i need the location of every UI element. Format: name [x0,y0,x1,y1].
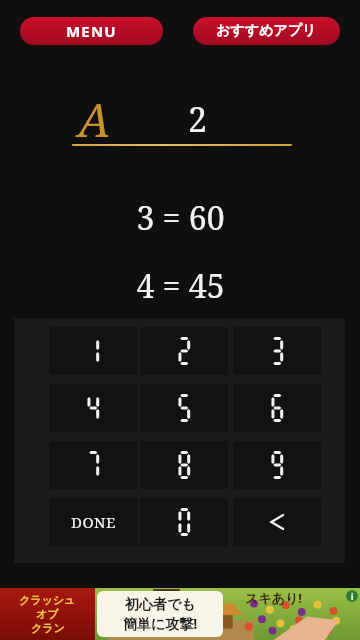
staticText: オブ [36,607,59,621]
staticText: A [78,88,111,151]
button[interactable]: Digit 1 [49,327,137,375]
staticText: MENU [66,21,117,41]
button[interactable]: Digit 8 [140,441,228,489]
button[interactable]: Digit 5 [140,384,228,432]
button[interactable]: Digit 2 [140,327,228,375]
button[interactable]: MENU [20,17,163,45]
button[interactable]: Digit 6 [233,384,321,432]
staticText: 4 = 45 [136,264,225,308]
button[interactable]: おすすめアプリ [193,17,340,45]
button[interactable]: Digit 4 [49,384,137,432]
button[interactable]: Digit 0 [140,498,228,546]
staticText: 簡単に攻撃! [123,614,198,633]
button[interactable]: Backspace [233,498,321,546]
staticText: DONE [71,512,116,532]
button[interactable]: DONE [49,498,137,546]
staticText: 3 = 60 [136,196,225,240]
button[interactable]: Digit 3 [233,327,321,375]
staticText: クラッシュ [19,593,76,607]
button[interactable]: Digit 9 [233,441,321,489]
button[interactable]: Digit 7 [49,441,137,489]
staticText: i [351,591,354,602]
button[interactable]: Advertisement [0,588,360,640]
staticText: おすすめアプリ [216,22,317,40]
staticText: クラン [31,621,65,635]
staticText: スキあり! [245,589,302,607]
staticText: 2 [188,96,208,142]
staticText: 初心者でも [125,596,196,614]
